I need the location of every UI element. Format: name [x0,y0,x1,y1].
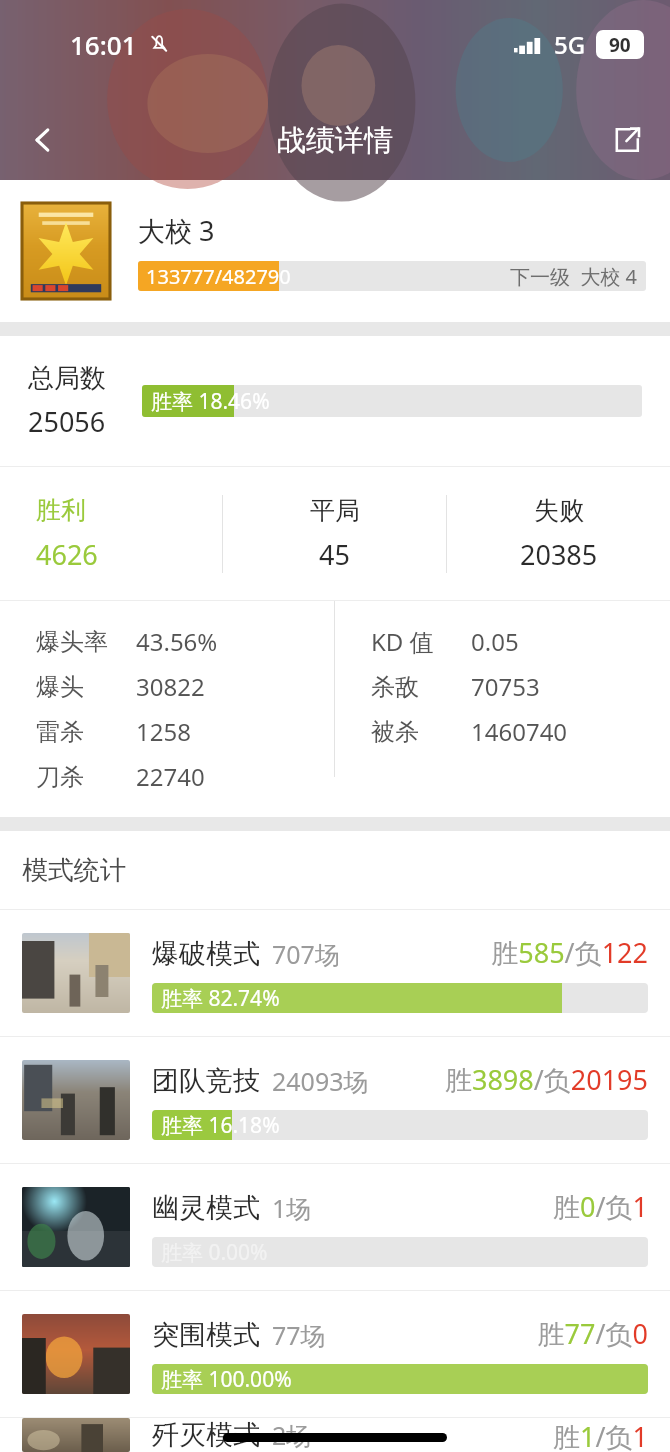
staticText: 平局 [310,495,360,526]
staticText: 1460740 [471,715,568,748]
staticText: 30822 [136,670,205,703]
staticText: 5G [554,28,586,61]
button[interactable]: 突围模式 [0,1291,670,1417]
staticText: 团队竞技 [152,1064,260,1098]
staticText: 大校 3 [138,212,215,249]
staticText: 胜77/负0 [537,1315,648,1352]
staticText: 胜率 0.00% [161,1238,268,1267]
staticText: 胜率 100.00% [161,1365,292,1394]
staticText: 胜3898/负20195 [444,1061,648,1098]
staticText: 爆头率 [36,627,108,657]
staticText: 24093场 [272,1064,369,1098]
staticText: 707场 [272,937,340,971]
staticText: 总局数 [28,362,106,395]
staticText: 1258 [136,715,191,748]
staticText: KD 值 [371,625,434,658]
staticText: 25056 [28,403,106,440]
staticText: 爆头 [36,672,84,702]
staticText: 下一级 大校 4 [510,263,638,290]
staticText: 胜1/负1 [553,1418,648,1452]
staticText: 被杀 [371,717,419,747]
staticText: 133777/482790 [146,263,291,290]
staticText: 77场 [272,1318,326,1352]
staticText: 胜利 [36,495,86,526]
staticText: 胜率 16.18% [161,1111,280,1140]
staticText: 70753 [471,670,540,703]
staticText: 失败 [534,495,584,526]
staticText: 歼灭模式 [152,1418,260,1452]
button[interactable]: 大校 3 [0,180,670,322]
staticText: 胜585/负122 [491,934,648,971]
staticText: 22740 [136,760,205,793]
button[interactable]: 幽灵模式 [0,1164,670,1290]
staticText: 杀敌 [371,672,419,702]
staticText: 胜率 82.74% [161,984,280,1013]
button[interactable]: 返回 [0,108,86,172]
staticText: 90 [609,32,631,58]
staticText: 20385 [520,536,598,573]
staticText: 爆破模式 [152,937,260,971]
staticText: 模式统计 [22,854,126,887]
staticText: 战绩详情 [277,122,393,159]
staticText: 2场 [272,1418,312,1452]
staticText: 胜率 18.46% [151,387,270,416]
button[interactable]: 爆破模式 [0,910,670,1036]
staticText: 幽灵模式 [152,1191,260,1225]
button[interactable]: 团队竞技 [0,1037,670,1163]
staticText: 45 [319,536,350,573]
staticText: 胜0/负1 [553,1188,648,1225]
button[interactable]: 分享 [584,108,670,172]
staticText: 16:01 [70,27,137,62]
button[interactable]: 歼灭模式 [0,1418,670,1452]
staticText: 突围模式 [152,1318,260,1352]
staticText: 4626 [36,536,98,573]
staticText: 雷杀 [36,717,84,747]
staticText: 1场 [272,1191,312,1225]
staticText: 43.56% [136,625,218,658]
staticText: 0.05 [471,625,519,658]
staticText: 刀杀 [36,762,84,792]
